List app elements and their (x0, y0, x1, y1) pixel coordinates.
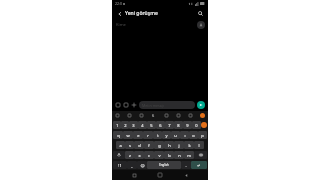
button[interactable]: ↵ (191, 161, 207, 169)
button[interactable]: Kime (112, 19, 208, 30)
button[interactable]: 3 (129, 121, 138, 129)
staticText: q (117, 133, 120, 138)
button[interactable]: h (164, 141, 174, 149)
button[interactable]: Theme (188, 113, 193, 118)
staticText: !1 (118, 163, 122, 168)
staticText: ı (184, 133, 186, 138)
button[interactable]: x (134, 151, 144, 159)
staticText: a (119, 143, 122, 148)
button[interactable]: z (125, 151, 134, 159)
button[interactable]: ı (180, 131, 189, 139)
button[interactable]: b (164, 151, 174, 159)
button[interactable]: Recents (130, 171, 138, 179)
staticText: v (158, 153, 161, 158)
button[interactable]: r (143, 131, 153, 139)
button[interactable]: w (123, 131, 133, 139)
button[interactable]: 0 (192, 121, 201, 129)
staticText: . (185, 163, 187, 168)
button[interactable]: q (113, 131, 123, 139)
button[interactable]: Back (182, 171, 190, 179)
staticText: n (178, 153, 181, 158)
button[interactable]: Send (197, 101, 205, 109)
button[interactable]: Sticker (127, 113, 132, 118)
staticText: 4 (141, 123, 144, 128)
button[interactable]: t (153, 131, 162, 139)
staticText: j (178, 143, 180, 148)
button[interactable]: Back (115, 9, 124, 18)
staticText: u (174, 133, 177, 138)
button[interactable]: 5 (147, 121, 156, 129)
button[interactable]: 9 (183, 121, 192, 129)
button[interactable]: , (127, 161, 137, 169)
staticText: ↵ (197, 163, 201, 168)
button[interactable]: !1 (113, 161, 127, 169)
button[interactable]: English (147, 161, 181, 169)
button[interactable]: s (125, 141, 134, 149)
button[interactable]: l (194, 141, 204, 149)
staticText: f (148, 143, 150, 148)
button[interactable]: ☺ (137, 161, 147, 169)
staticText: e (137, 133, 140, 138)
staticText: ⬆⬇ (188, 2, 194, 5)
button[interactable]: Home (156, 171, 164, 179)
button[interactable]: v (154, 151, 164, 159)
staticText: 6 (159, 123, 162, 128)
button[interactable]: Camera (115, 102, 121, 108)
button[interactable]: Backspace (194, 151, 207, 159)
staticText: Metin mesajı (142, 103, 164, 108)
button[interactable]: n (174, 151, 184, 159)
staticText: 9 (186, 123, 189, 128)
button[interactable]: c (144, 151, 154, 159)
button[interactable]: Voice (201, 122, 207, 128)
staticText: k (188, 143, 191, 148)
button[interactable]: Translate (176, 113, 181, 118)
staticText: 7 (168, 123, 171, 128)
button[interactable]: Add contact (197, 21, 205, 29)
button[interactable]: 6 (156, 121, 165, 129)
button[interactable]: d (134, 141, 144, 149)
button[interactable]: 2 (121, 121, 129, 129)
button[interactable]: Metin mesajı (139, 101, 195, 109)
button[interactable]: Search (196, 9, 205, 18)
staticText: 6 (152, 113, 155, 118)
button[interactable]: j (174, 141, 184, 149)
button[interactable]: a (116, 141, 125, 149)
button[interactable]: m (184, 151, 194, 159)
button[interactable]: f (144, 141, 154, 149)
button[interactable]: 7 (165, 121, 174, 129)
button[interactable]: Settings (115, 113, 120, 118)
button[interactable]: Gallery (123, 102, 129, 108)
button[interactable]: u (171, 131, 180, 139)
staticText: s (129, 143, 131, 148)
staticText: m (187, 153, 191, 158)
button[interactable]: k (184, 141, 194, 149)
button[interactable]: Emoji (151, 113, 156, 118)
staticText: d (138, 143, 141, 148)
button[interactable]: y (162, 131, 171, 139)
button[interactable]: e (133, 131, 143, 139)
button[interactable]: p (198, 131, 207, 139)
button[interactable]: Shift (113, 151, 125, 159)
staticText: h (168, 143, 171, 148)
staticText: 0 (195, 123, 198, 128)
staticText: English (159, 163, 169, 167)
button[interactable]: 8 (174, 121, 183, 129)
button[interactable]: Clipboard (164, 113, 169, 118)
button[interactable]: 4 (138, 121, 147, 129)
staticText: p (201, 133, 204, 138)
staticText: , (131, 163, 133, 168)
button[interactable]: Add attachment (131, 102, 137, 108)
staticText: c (148, 153, 150, 158)
button[interactable]: Voice input (200, 113, 205, 118)
staticText: g (158, 143, 161, 148)
staticText: r (147, 133, 149, 138)
button[interactable]: g (154, 141, 164, 149)
button[interactable]: GIF (139, 113, 144, 118)
staticText: ☺ (140, 163, 145, 168)
button[interactable]: o (189, 131, 198, 139)
button[interactable]: . (181, 161, 191, 169)
staticText: l (198, 143, 200, 148)
staticText: 3 (132, 123, 135, 128)
button[interactable]: 1 (113, 121, 121, 129)
staticText: 1 (116, 123, 119, 128)
